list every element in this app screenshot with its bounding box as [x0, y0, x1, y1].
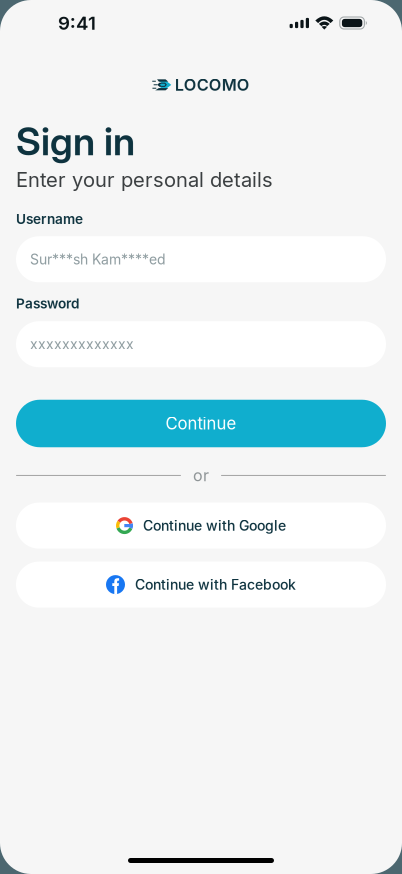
- staticText: Password: [16, 295, 79, 312]
- button[interactable]: Continue: [16, 400, 386, 447]
- staticText: Sur***sh Kam****ed: [30, 251, 166, 268]
- staticText: LOCOMO: [175, 75, 250, 95]
- staticText: Continue with Facebook: [135, 576, 296, 593]
- staticText: Sign in: [16, 118, 135, 164]
- button[interactable]: Continue with Facebook: [16, 562, 386, 608]
- staticText: Continue with Google: [143, 517, 286, 534]
- staticText: Username: [16, 211, 83, 227]
- button[interactable]: Continue with Google: [16, 503, 386, 549]
- staticText: xxxxxxxxxxxxx: [30, 336, 134, 353]
- staticText: or: [193, 466, 209, 485]
- staticText: Continue: [165, 413, 236, 434]
- staticText: 9:41: [58, 12, 96, 34]
- staticText: Enter your personal details: [16, 167, 273, 192]
